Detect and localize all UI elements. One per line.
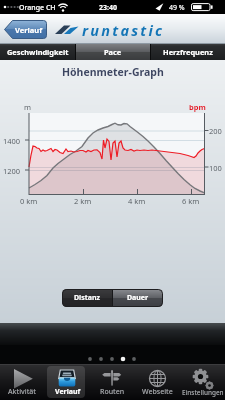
staticText: Höhenmeter-Graph <box>62 65 164 79</box>
staticText: 200 <box>209 126 222 136</box>
staticText: m <box>24 102 32 112</box>
button[interactable]: Herzfrequenz <box>151 44 225 60</box>
button[interactable]: Einstellungen <box>180 364 225 400</box>
staticText: Geschwindigkeit <box>7 47 69 57</box>
button[interactable]: Webseite <box>135 364 180 400</box>
staticText: Pace <box>104 47 122 57</box>
button[interactable]: Verlauf <box>4 20 47 39</box>
button[interactable]: Routen <box>90 364 135 400</box>
button[interactable]: Verlauf <box>45 364 90 400</box>
button[interactable]: Dauer <box>113 289 163 307</box>
button[interactable]: Geschwindigkeit <box>0 44 75 60</box>
staticText: 4 km <box>128 196 146 206</box>
staticText: 2 km <box>74 196 92 206</box>
staticText: Dauer <box>127 293 149 303</box>
staticText: Routen <box>100 387 125 397</box>
staticText: 1200 <box>3 166 21 176</box>
staticText: Orange CH <box>19 3 56 13</box>
staticText: 1400 <box>3 136 21 146</box>
staticText: runtastic <box>82 20 165 40</box>
staticText: Verlauf <box>15 25 43 35</box>
staticText: Einstellungen <box>182 388 224 397</box>
staticText: Distanz <box>74 293 100 303</box>
staticText: 0 km <box>20 196 38 206</box>
staticText: bpm <box>189 102 206 112</box>
staticText: 49 % <box>169 3 185 13</box>
staticText: Aktivität <box>8 387 37 397</box>
staticText: 23:40 <box>99 3 117 13</box>
button[interactable]: Pace <box>76 44 150 60</box>
staticText: 6 km <box>182 196 200 206</box>
button[interactable]: Distanz <box>62 289 112 307</box>
staticText: 100 <box>209 163 222 173</box>
staticText: Verlauf <box>55 387 81 397</box>
staticText: Webseite <box>142 387 173 397</box>
staticText: Herzfrequenz <box>163 47 213 57</box>
button[interactable]: Aktivität <box>0 364 45 400</box>
